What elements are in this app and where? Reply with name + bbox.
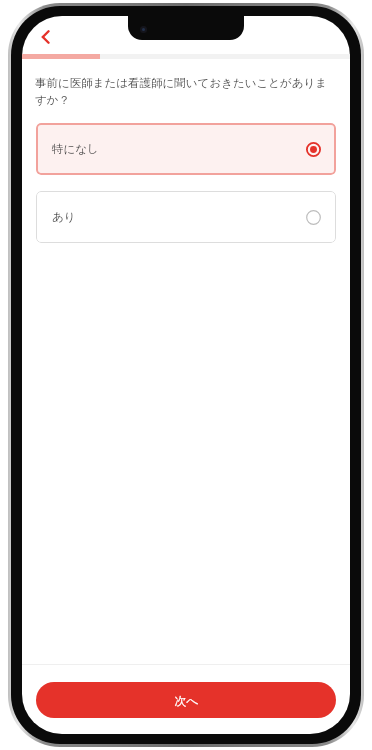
button[interactable]: 次へ bbox=[36, 682, 336, 718]
staticText: あり bbox=[52, 210, 76, 224]
button[interactable]: 特になし bbox=[36, 123, 336, 175]
button[interactable]: Back bbox=[28, 19, 64, 55]
staticText: 次へ bbox=[174, 693, 199, 708]
staticText: 特になし bbox=[52, 142, 99, 156]
staticText: 事前に医師または看護師に聞いておきたいことがありますか？ bbox=[35, 76, 337, 107]
button[interactable]: あり bbox=[36, 191, 336, 243]
